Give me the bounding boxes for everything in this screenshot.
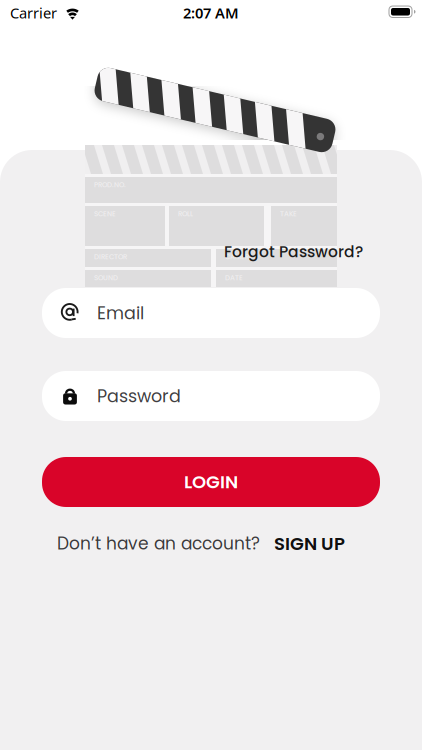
staticText: TAKE [280, 209, 297, 219]
staticText: DATE [225, 273, 243, 283]
button[interactable]: SIGN UP [274, 531, 345, 556]
staticText: CAMERA [225, 252, 254, 262]
button[interactable]: Forgot Password? [224, 241, 363, 263]
staticText: SOUND [94, 273, 118, 283]
staticText: 2:07 AM [183, 3, 239, 22]
staticText: SCENE [94, 209, 116, 219]
button[interactable]: LOGIN [42, 457, 380, 507]
staticText: PROD.NO. [94, 180, 126, 190]
staticText: Password [97, 384, 181, 408]
staticText: LOGIN [184, 469, 238, 495]
button[interactable]: Email [42, 288, 380, 338]
staticText: Don’t have an account? [57, 532, 260, 555]
staticText: DIRECTOR [94, 252, 127, 262]
button[interactable]: Password [42, 371, 380, 421]
staticText: Email [97, 301, 144, 325]
staticText: Carrier [10, 3, 57, 22]
staticText: Forgot Password? [224, 241, 363, 263]
staticText: ROLL [178, 209, 193, 219]
staticText: SIGN UP [274, 531, 345, 556]
